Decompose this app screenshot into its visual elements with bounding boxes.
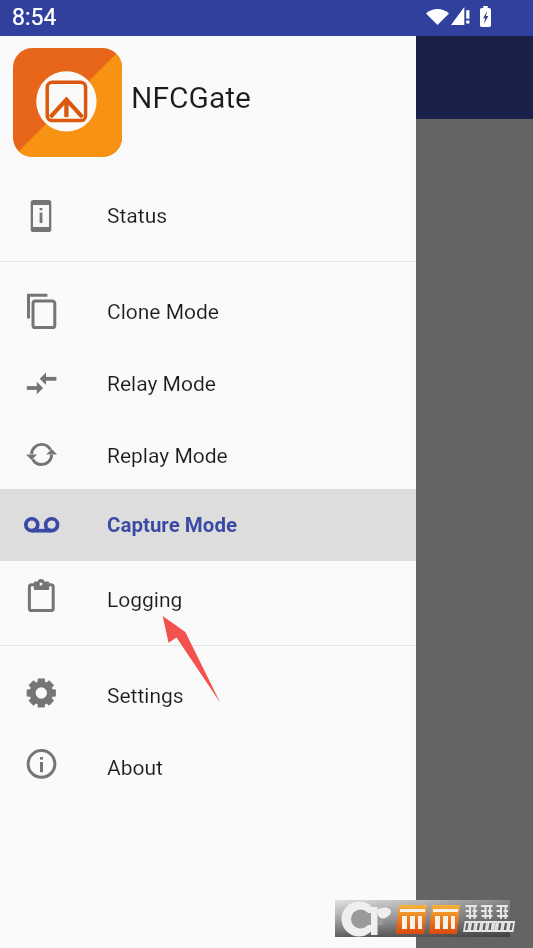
button[interactable]: Logging: [0, 561, 416, 633]
staticText: Status: [107, 204, 168, 229]
staticText: Clone Mode: [107, 300, 219, 325]
staticText: Logging: [107, 588, 183, 613]
button[interactable]: Relay Mode: [0, 345, 416, 417]
staticText: Relay Mode: [107, 372, 216, 397]
button[interactable]: Status: [0, 177, 416, 249]
staticText: 8:54: [12, 4, 57, 31]
button[interactable]: Capture Mode: [0, 489, 416, 561]
button[interactable]: About: [0, 729, 416, 801]
button[interactable]: Settings: [0, 657, 416, 729]
staticText: Settings: [107, 684, 184, 709]
staticText: About: [107, 756, 163, 781]
staticText: NFCGate: [131, 80, 251, 115]
staticText: Replay Mode: [107, 444, 228, 469]
button[interactable]: Replay Mode: [0, 417, 416, 489]
staticText: Capture Mode: [107, 513, 238, 537]
button[interactable]: Clone Mode: [0, 273, 416, 345]
